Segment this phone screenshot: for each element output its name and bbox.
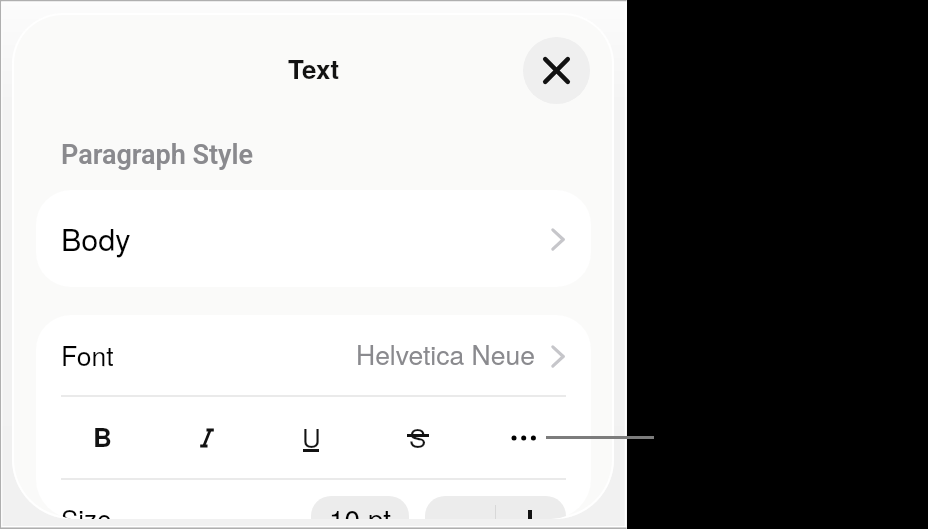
- staticText: U: [302, 418, 321, 455]
- button[interactable]: Italic: [183, 416, 231, 460]
- button[interactable]: More formatting options: [500, 414, 548, 458]
- button[interactable]: S: [394, 414, 442, 458]
- staticText: 10 pt: [329, 498, 392, 519]
- button[interactable]: Increase font size: [495, 496, 566, 519]
- staticText: Size: [61, 499, 112, 519]
- staticText: B: [93, 418, 112, 455]
- staticText: Helvetica Neue: [356, 335, 535, 373]
- button[interactable]: Close: [523, 37, 590, 104]
- button[interactable]: Decrease font size: [425, 496, 495, 519]
- button[interactable]: Font: [36, 315, 591, 396]
- staticText: Font: [61, 336, 114, 374]
- staticText: Text: [288, 50, 340, 87]
- button[interactable]: 10 pt: [311, 496, 409, 519]
- staticText: Paragraph Style: [61, 139, 254, 171]
- staticText: S: [409, 418, 427, 455]
- staticText: Body: [61, 216, 131, 260]
- button[interactable]: B: [78, 414, 126, 458]
- button[interactable]: U: [287, 414, 335, 458]
- button[interactable]: Body: [36, 190, 591, 287]
